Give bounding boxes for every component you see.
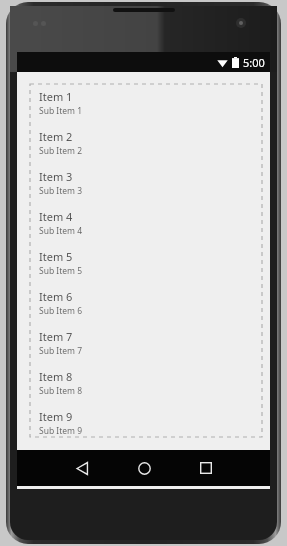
staticText: Item 8 [39, 369, 73, 384]
staticText: Item 9 [39, 409, 73, 424]
button[interactable]: Item 4 [30, 204, 262, 244]
button[interactable]: Back [51, 450, 113, 486]
button[interactable]: Item 3 [30, 164, 262, 204]
staticText: Item 5 [39, 249, 73, 264]
button[interactable]: Item 8 [30, 364, 262, 404]
staticText: Sub Item 6 [39, 305, 83, 317]
staticText: Item 4 [39, 209, 73, 224]
button[interactable]: Item 7 [30, 324, 262, 364]
staticText: Item 7 [39, 329, 73, 344]
button[interactable]: Item 5 [30, 244, 262, 284]
button[interactable]: Item 6 [30, 284, 262, 324]
staticText: Sub Item 5 [39, 265, 83, 277]
staticText: 5:00 [243, 55, 265, 70]
button[interactable]: Home [113, 450, 175, 486]
staticText: Item 2 [39, 129, 73, 144]
staticText: Sub Item 1 [39, 105, 83, 117]
button[interactable]: Item 1 [30, 84, 262, 124]
staticText: Sub Item 4 [39, 225, 83, 237]
button[interactable]: Recent apps [175, 450, 237, 486]
staticText: Sub Item 8 [39, 385, 83, 397]
staticText: Sub Item 7 [39, 345, 83, 357]
staticText: Sub Item 3 [39, 185, 83, 197]
staticText: Item 1 [39, 89, 73, 104]
staticText: Sub Item 2 [39, 145, 83, 157]
button[interactable]: Item 2 [30, 124, 262, 164]
staticText: Sub Item 9 [39, 425, 83, 437]
staticText: Item 3 [39, 169, 73, 184]
staticText: Item 6 [39, 289, 73, 304]
button[interactable]: Item 9 [30, 404, 262, 437]
